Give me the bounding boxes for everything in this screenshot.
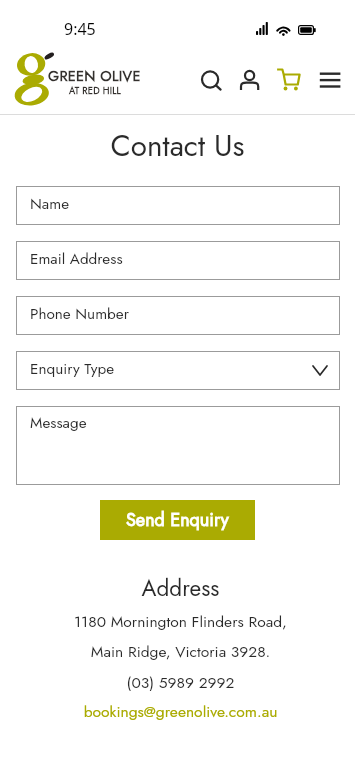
button[interactable]: Search xyxy=(198,67,223,93)
staticText: AT RED HILL xyxy=(69,84,122,98)
button[interactable]: Name xyxy=(16,186,340,225)
staticText: Contact Us xyxy=(0,124,355,167)
staticText: Main Ridge, Victoria 3928. xyxy=(3,640,355,663)
button[interactable]: Menu xyxy=(318,68,342,92)
staticText: Address xyxy=(3,572,355,605)
button[interactable]: Send Enquiry xyxy=(100,500,255,540)
button[interactable]: Email Address xyxy=(16,241,340,280)
button[interactable]: bookings@greenolive.com.au xyxy=(3,700,355,724)
staticText: Email Address xyxy=(30,248,123,270)
staticText: 1180 Mornington Flinders Road, xyxy=(3,610,355,633)
staticText: GREEN OLIVE xyxy=(48,66,141,87)
button[interactable]: Account xyxy=(238,66,262,92)
staticText: Phone Number xyxy=(30,303,129,325)
staticText: Name xyxy=(30,193,70,215)
staticText: 9:45 xyxy=(64,18,96,40)
button[interactable]: Enquiry Type xyxy=(16,351,340,390)
staticText: bookings@greenolive.com.au xyxy=(3,700,355,723)
staticText: Send Enquiry xyxy=(126,507,229,533)
button[interactable]: Message xyxy=(16,406,340,485)
staticText: (03) 5989 2992 xyxy=(3,671,355,694)
button[interactable]: Phone Number xyxy=(16,296,340,335)
staticText: Enquiry Type xyxy=(30,358,115,380)
staticText: Message xyxy=(30,412,87,434)
button[interactable]: Cart xyxy=(275,66,303,94)
